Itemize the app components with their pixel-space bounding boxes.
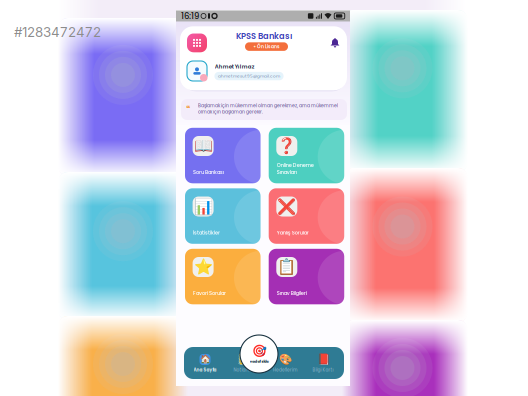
staticText: Ana Sayfa [193,367,216,373]
staticText: Online Deneme Sınavları [277,162,314,176]
button[interactable]: ✦ [245,42,288,51]
button[interactable]: 📒 [225,351,261,376]
staticText: Notlarım [233,367,252,373]
staticText: ❓ [277,137,296,155]
button[interactable]: 📊 [185,188,260,244]
button[interactable]: ⭐ [185,249,260,304]
staticText: Favori Sorular [193,290,226,297]
button[interactable]: 🏠 [187,351,223,376]
button[interactable]: 📋 [269,249,344,304]
staticText: 📕 [316,353,329,366]
staticText: #1283472472 [14,24,101,40]
staticText: Sınav Bilgileri [277,290,307,297]
staticText: İstatistikler [193,229,220,236]
staticText: Ahmet Yılmaz [215,63,255,70]
staticText: ❌ [277,197,296,215]
staticText: ⭐ [194,258,213,276]
staticText: ❝ [186,104,190,112]
staticText: KPSS Bankası [236,30,292,42]
button[interactable]: 🎯 [240,335,278,373]
staticText: 📒 [236,353,249,366]
staticText: 📖 [194,137,213,155]
button[interactable]: 🎨 [267,351,303,376]
staticText: 16:19 [181,10,199,22]
button[interactable]: Menu [187,33,207,52]
staticText: 🏠 [199,354,210,365]
staticText: Hedef Ekle [249,358,268,364]
staticText: Soru Bankası [193,169,224,176]
button[interactable]: ❌ [269,188,344,244]
staticText: Bilgi Kartı [312,367,333,373]
button[interactable]: Notifications [329,37,340,49]
button[interactable]: ❓ [269,128,344,183]
staticText: 🎨 [278,353,291,366]
staticText: 🎯 [251,344,266,358]
button[interactable]: 📖 [185,128,260,183]
button[interactable]: 📕 [305,351,341,376]
staticText: ahmetmesut95@gmail.com [218,73,280,79]
staticText: ✦ [253,44,256,49]
staticText: Başlamak için mükemmel olman gerekmez, a… [198,102,338,115]
staticText: Hedeflerim [273,367,297,373]
staticText: Ön Lisans [257,43,280,50]
staticText: Yanlış Sorular [277,229,309,236]
staticText: 📊 [194,197,213,215]
staticText: 📋 [277,258,296,276]
